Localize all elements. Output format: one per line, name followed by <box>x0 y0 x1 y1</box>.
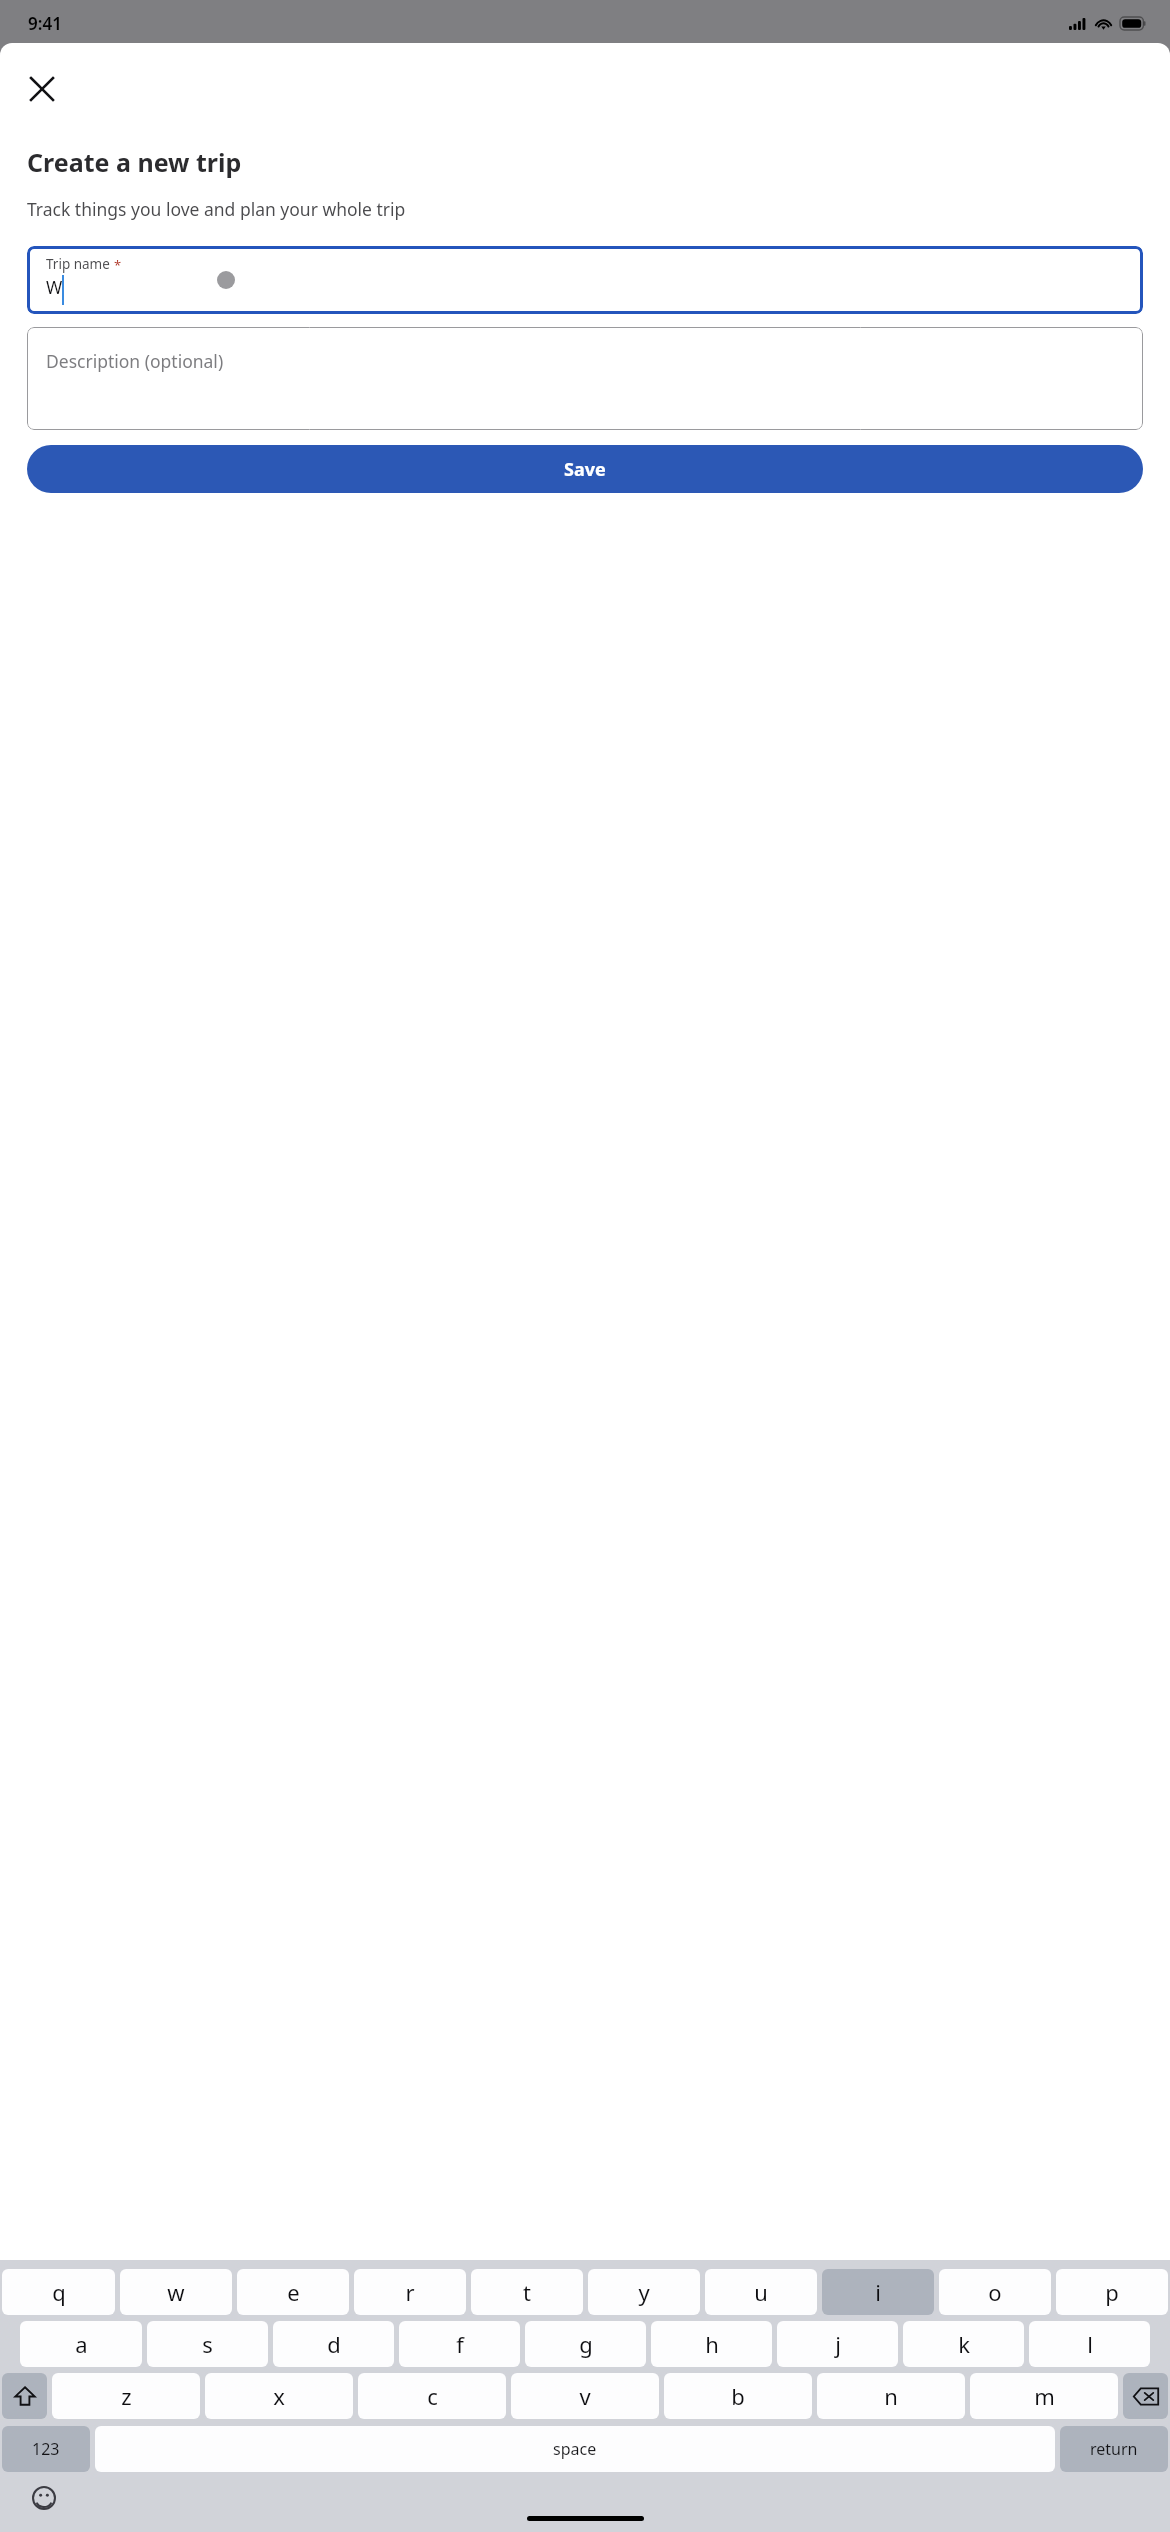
button[interactable]: z <box>52 2373 200 2419</box>
button[interactable]: Key <box>2 2373 47 2419</box>
button[interactable]: return <box>1060 2426 1168 2472</box>
staticText: l <box>1087 2329 1093 2359</box>
button[interactable]: o <box>939 2269 1051 2315</box>
button[interactable]: f <box>399 2321 520 2367</box>
button[interactable]: b <box>664 2373 812 2419</box>
staticText: t <box>523 2277 531 2307</box>
staticText: s <box>202 2329 213 2359</box>
button[interactable]: s <box>147 2321 268 2367</box>
staticText: a <box>75 2329 88 2359</box>
button[interactable]: k <box>903 2321 1024 2367</box>
button[interactable]: w <box>120 2269 232 2315</box>
staticText: e <box>287 2277 300 2307</box>
staticText: m <box>1034 2381 1055 2411</box>
button[interactable]: x <box>205 2373 353 2419</box>
staticText: b <box>731 2381 745 2411</box>
button[interactable]: j <box>777 2321 898 2367</box>
staticText: h <box>705 2329 719 2359</box>
button[interactable]: v <box>511 2373 659 2419</box>
button[interactable]: Save <box>27 445 1143 493</box>
button[interactable]: d <box>273 2321 394 2367</box>
staticText: 9:41 <box>28 12 62 35</box>
button[interactable]: Emoji <box>22 2476 66 2520</box>
button[interactable]: p <box>1056 2269 1168 2315</box>
staticText: x <box>273 2381 285 2411</box>
button[interactable]: h <box>651 2321 772 2367</box>
button[interactable]: 123 <box>2 2426 90 2472</box>
button[interactable]: c <box>358 2373 506 2419</box>
button[interactable]: u <box>705 2269 817 2315</box>
button[interactable]: Key <box>1123 2373 1168 2419</box>
staticText: Create a new trip <box>27 145 242 179</box>
staticText: Description (optional) <box>46 349 224 373</box>
staticText: n <box>884 2381 898 2411</box>
staticText: Track things you love and plan your whol… <box>27 197 406 221</box>
button[interactable]: a <box>20 2321 142 2367</box>
staticText: Save <box>564 457 606 482</box>
staticText: u <box>754 2277 768 2307</box>
staticText: j <box>835 2329 841 2359</box>
staticText: y <box>638 2277 650 2307</box>
button[interactable]: space <box>95 2426 1055 2472</box>
staticText: z <box>121 2381 132 2411</box>
staticText: d <box>327 2329 341 2359</box>
button[interactable]: e <box>237 2269 349 2315</box>
staticText: w <box>167 2277 185 2307</box>
button[interactable]: m <box>970 2373 1118 2419</box>
staticText: return <box>1090 2438 1138 2460</box>
staticText: Trip name <box>46 255 110 273</box>
button[interactable]: i <box>822 2269 934 2315</box>
staticText: space <box>553 2438 597 2460</box>
staticText: W <box>46 275 63 299</box>
staticText: c <box>427 2381 438 2411</box>
button[interactable]: Close <box>14 61 70 117</box>
staticText: v <box>579 2381 591 2411</box>
staticText: * <box>114 256 122 274</box>
button[interactable]: t <box>471 2269 583 2315</box>
button[interactable]: Description (optional) <box>27 327 1143 430</box>
button[interactable]: n <box>817 2373 965 2419</box>
staticText: k <box>958 2329 970 2359</box>
button[interactable]: g <box>525 2321 646 2367</box>
button[interactable]: l <box>1029 2321 1150 2367</box>
button[interactable]: r <box>354 2269 466 2315</box>
staticText: f <box>456 2329 464 2359</box>
staticText: r <box>405 2277 415 2307</box>
staticText: g <box>579 2329 593 2359</box>
staticText: q <box>52 2277 66 2307</box>
staticText: i <box>875 2277 881 2307</box>
button[interactable]: q <box>2 2269 115 2315</box>
button[interactable]: y <box>588 2269 700 2315</box>
staticText: o <box>988 2277 1002 2307</box>
staticText: p <box>1105 2277 1119 2307</box>
button[interactable]: Trip name <box>27 246 1143 314</box>
staticText: 123 <box>32 2438 60 2460</box>
